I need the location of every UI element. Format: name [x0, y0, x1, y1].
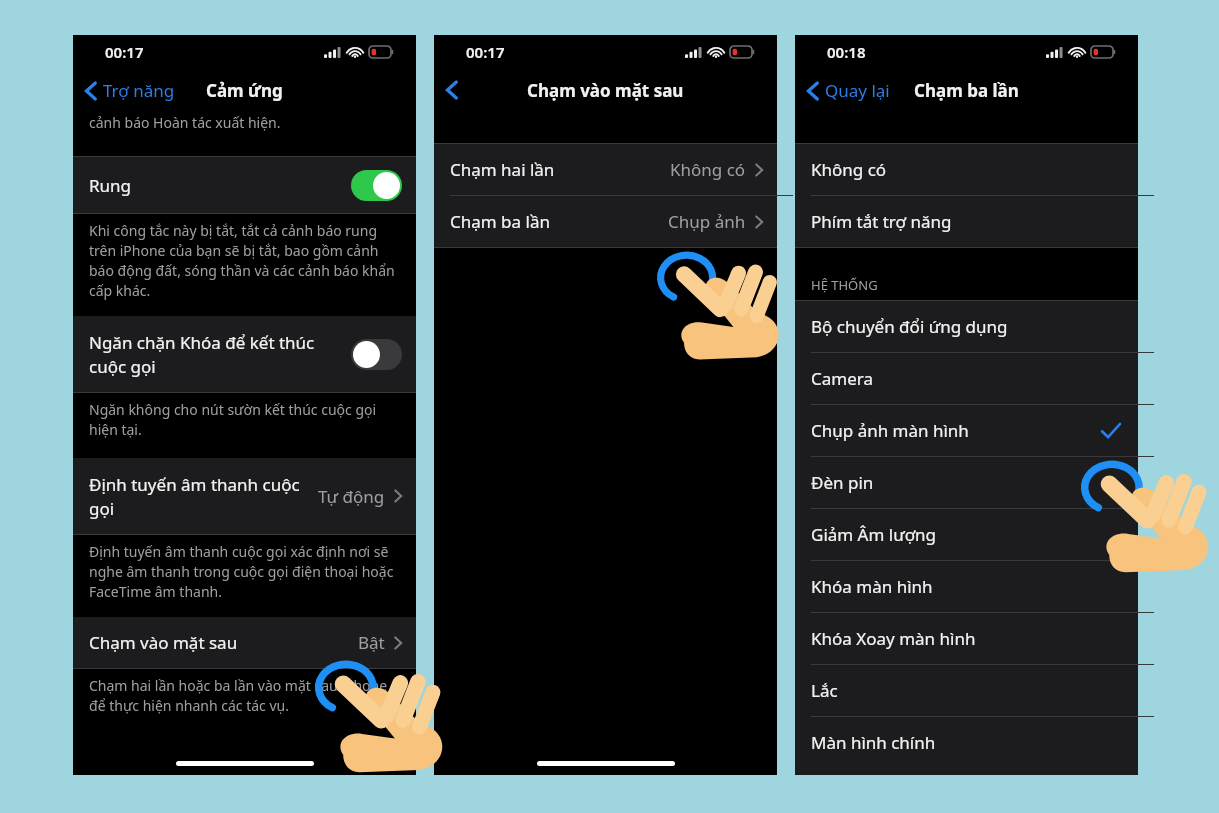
button[interactable]: Off: [351, 339, 402, 370]
staticText: Chạm vào mặt sau: [89, 631, 238, 654]
button[interactable]: Chạm hai lần: [434, 144, 777, 195]
button[interactable]: Phím tắt trợ năng: [795, 196, 1138, 247]
button[interactable]: Chạm ba lần: [434, 196, 777, 247]
staticText: Định tuyến âm thanh cuộc gọi: [89, 473, 310, 520]
staticText: Đèn pin: [811, 471, 874, 494]
staticText: Chụp ảnh: [668, 210, 746, 233]
staticText: Khóa Xoay màn hình: [811, 627, 976, 650]
button[interactable]: Bộ chuyển đổi ứng dụng: [795, 301, 1138, 352]
button[interactable]: Chạm vào mặt sau: [73, 617, 416, 668]
button[interactable]: Khóa màn hình: [795, 561, 1138, 612]
button[interactable]: Camera: [795, 353, 1138, 404]
button[interactable]: Giảm Âm lượng: [795, 509, 1138, 560]
staticText: Chạm vào mặt sau: [527, 79, 684, 102]
staticText: Khi công tắc này bị tắt, tắt cả cảnh báo…: [89, 221, 396, 300]
staticText: Chạm ba lần: [450, 210, 550, 233]
staticText: Trợ năng: [103, 79, 175, 102]
staticText: 00:18: [827, 42, 866, 62]
button[interactable]: Quay lại: [795, 75, 898, 106]
staticText: 00:17: [105, 42, 144, 62]
button[interactable]: Chụp ảnh màn hình: [795, 405, 1138, 456]
button[interactable]: Không có: [795, 144, 1138, 195]
staticText: Camera: [811, 367, 873, 390]
staticText: 00:17: [466, 42, 505, 62]
staticText: cảnh báo Hoàn tác xuất hiện.: [89, 113, 281, 132]
staticText: HỆ THỐNG: [811, 276, 878, 294]
button[interactable]: Màn hình chính: [795, 717, 1138, 768]
staticText: Lắc: [811, 679, 838, 702]
staticText: Chạm ba lần: [914, 79, 1019, 102]
staticText: Chạm hai lần hoặc ba lần vào mặt sau iPh…: [89, 676, 392, 715]
button[interactable]: Lắc: [795, 665, 1138, 716]
button[interactable]: Đèn pin: [795, 457, 1138, 508]
button[interactable]: Trợ năng: [73, 75, 183, 106]
staticText: Giảm Âm lượng: [811, 523, 937, 546]
button[interactable]: On: [351, 170, 402, 201]
staticText: Ngăn chặn Khóa để kết thúc cuộc gọi: [89, 331, 341, 378]
staticText: Tự động: [318, 485, 385, 508]
staticText: Màn hình chính: [811, 731, 936, 754]
button[interactable]: Ngăn chặn Khóa để kết thúc cuộc gọi: [73, 316, 416, 392]
button[interactable]: Rung: [73, 157, 416, 213]
button[interactable]: Định tuyến âm thanh cuộc gọi: [73, 458, 416, 534]
button[interactable]: Khóa Xoay màn hình: [795, 613, 1138, 664]
staticText: Khóa màn hình: [811, 575, 933, 598]
staticText: Cảm ứng: [206, 79, 283, 102]
staticText: Chụp ảnh màn hình: [811, 419, 969, 442]
staticText: Bật: [358, 631, 385, 654]
staticText: Chạm hai lần: [450, 158, 555, 181]
staticText: Định tuyến âm thanh cuộc gọi xác định nơ…: [89, 542, 396, 601]
staticText: Quay lại: [825, 79, 890, 102]
button[interactable]: Back: [434, 76, 466, 104]
staticText: Không có: [811, 158, 887, 181]
staticText: Ngăn không cho nút sườn kết thúc cuộc gọ…: [89, 400, 396, 439]
staticText: Phím tắt trợ năng: [811, 210, 952, 233]
staticText: Bộ chuyển đổi ứng dụng: [811, 315, 1008, 338]
staticText: Không có: [670, 158, 746, 181]
staticText: Rung: [89, 174, 132, 197]
